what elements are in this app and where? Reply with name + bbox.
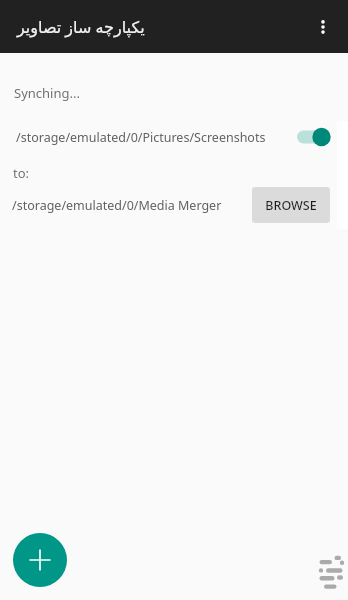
staticText: BROWSE <box>265 197 317 214</box>
staticText: /storage/emulated/0/Media Merger <box>12 197 222 214</box>
staticText: Synching... <box>14 84 80 102</box>
button[interactable]: /storage/emulated/0/Pictures/Screenshots <box>0 123 292 151</box>
staticText: to: <box>13 164 30 182</box>
button[interactable]: Sync source toggle <box>291 121 337 153</box>
button[interactable]: BROWSE <box>252 187 330 223</box>
staticText: /storage/emulated/0/Pictures/Screenshots <box>16 129 266 146</box>
staticText: یکپارچه ساز تصاویر <box>17 16 145 38</box>
button[interactable]: Add <box>13 533 67 587</box>
button[interactable]: More options <box>306 10 340 44</box>
button[interactable]: /storage/emulated/0/Media Merger <box>0 192 245 219</box>
